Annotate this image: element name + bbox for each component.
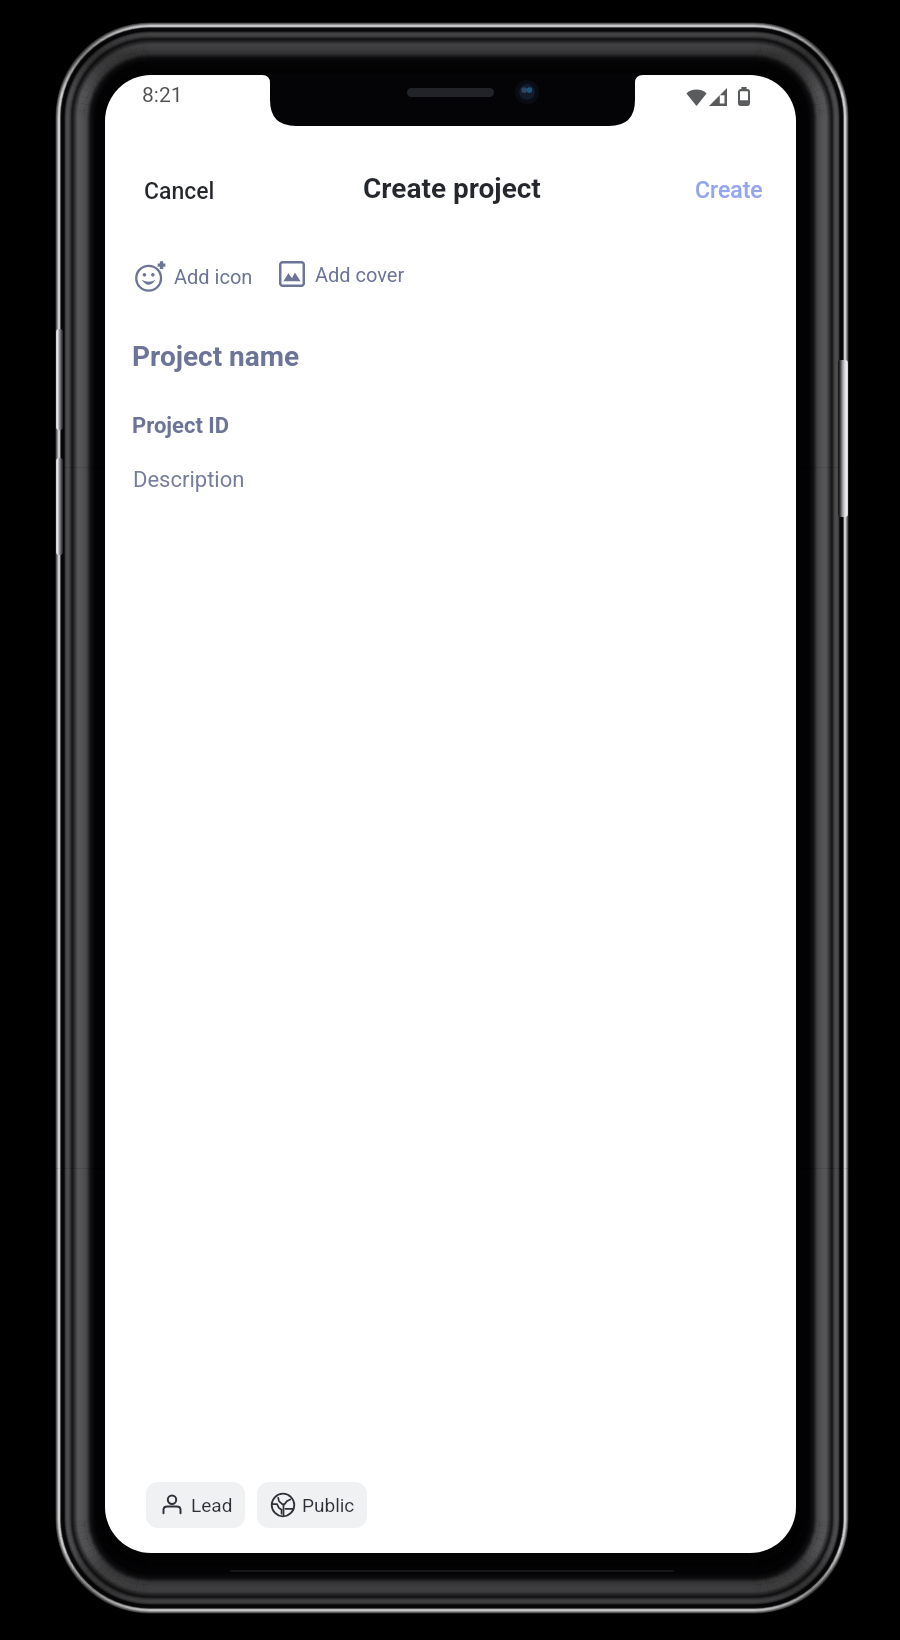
staticText: Create project	[363, 172, 541, 205]
button[interactable]: Cancel	[114, 166, 245, 217]
staticText: Description	[133, 467, 245, 493]
staticText: Project name	[132, 340, 300, 373]
staticText: 8:21	[142, 83, 183, 108]
staticText: Project ID	[132, 413, 230, 439]
staticText: Create	[695, 177, 763, 204]
button[interactable]: Public	[257, 1482, 367, 1528]
button[interactable]: Create	[665, 165, 793, 216]
staticText: Lead	[191, 1494, 233, 1516]
staticText: Add cover	[315, 263, 405, 286]
button[interactable]: Add cover	[271, 255, 413, 293]
button[interactable]: Add icon	[127, 255, 261, 298]
staticText: Public	[302, 1494, 355, 1516]
button[interactable]: Lead	[146, 1482, 245, 1528]
staticText: Add icon	[174, 265, 253, 288]
staticText: Cancel	[144, 178, 215, 205]
